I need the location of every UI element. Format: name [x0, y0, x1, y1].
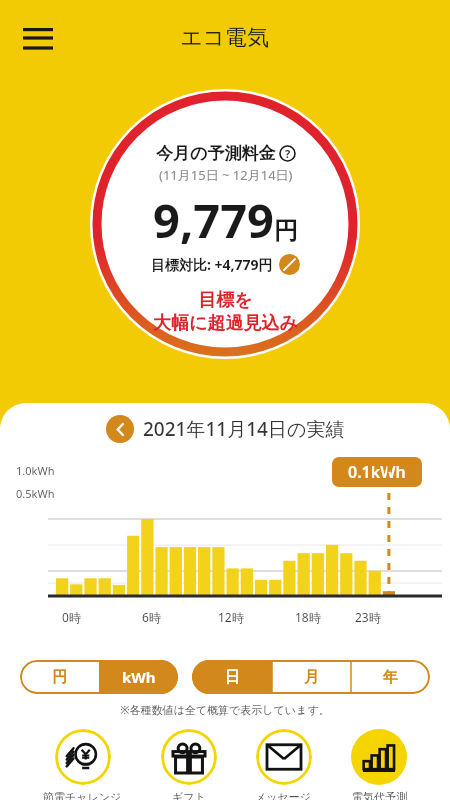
button[interactable]: 円	[20, 660, 99, 694]
staticText: ギフト	[172, 790, 206, 800]
staticText: 年	[383, 668, 398, 687]
button[interactable]: kWh	[99, 660, 178, 694]
staticText: 23時	[355, 609, 381, 625]
staticText: kWh	[122, 667, 156, 687]
button[interactable]: ギフト	[157, 729, 221, 800]
staticText: 18時	[295, 609, 321, 625]
button[interactable]: 月	[272, 660, 351, 694]
staticText: 目標を	[198, 289, 253, 312]
button[interactable]: Menu	[14, 14, 62, 62]
staticText: エコ電気	[180, 24, 270, 52]
button[interactable]: Help	[279, 145, 296, 162]
staticText: 月	[304, 668, 319, 687]
staticText: 日	[225, 668, 240, 687]
staticText: 節電チャレンジ	[43, 790, 122, 800]
staticText: 9,779	[153, 188, 274, 252]
staticText: (11月15日 ~ 12月14日)	[159, 166, 293, 184]
button[interactable]: 節電チャレンジ	[39, 729, 126, 800]
staticText: 6時	[142, 609, 161, 625]
staticText: 12時	[218, 609, 244, 625]
staticText: ※各種数値は全て概算で表示しています。	[0, 702, 450, 717]
staticText: 円	[274, 216, 298, 246]
staticText: 1.0kWh	[16, 463, 55, 478]
staticText: 2021年11月14日の実績	[143, 416, 345, 442]
staticText: メッセージ	[255, 790, 312, 800]
staticText: 電気代予測	[352, 790, 407, 800]
staticText: 0時	[62, 609, 81, 625]
staticText: 大幅に超過見込み	[153, 312, 298, 335]
button[interactable]: Edit target	[279, 254, 300, 275]
button[interactable]: メッセージ	[251, 729, 316, 800]
staticText: 0.5kWh	[16, 486, 55, 501]
button[interactable]: 電気代予測	[347, 729, 411, 800]
staticText: 目標対比: +4,779円	[151, 255, 273, 274]
staticText: 今月の予測料金	[156, 143, 276, 164]
staticText: 0.1kWh	[348, 461, 406, 483]
staticText: ?	[285, 146, 291, 161]
button[interactable]: 日	[192, 660, 272, 694]
button[interactable]: Previous day	[106, 415, 134, 443]
staticText: 円	[52, 668, 67, 687]
button[interactable]: 年	[351, 660, 430, 694]
